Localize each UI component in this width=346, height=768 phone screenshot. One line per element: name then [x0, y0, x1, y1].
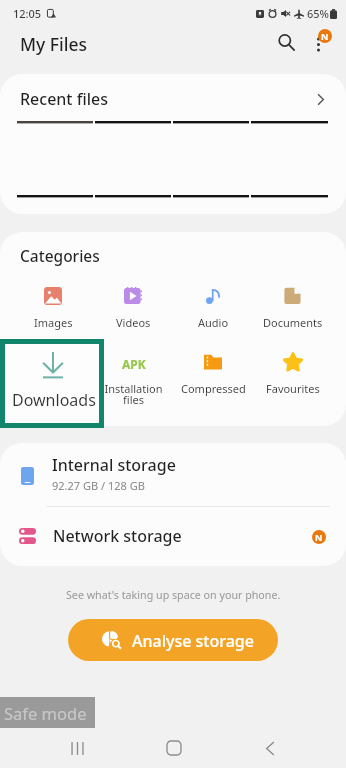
- staticText: Recent files: [20, 88, 108, 110]
- button[interactable]: Videos: [93, 287, 173, 330]
- button[interactable]: Favourites: [253, 353, 333, 396]
- button[interactable]: Recent files: [0, 74, 346, 122]
- button[interactable]: Internal storage: [0, 443, 346, 506]
- staticText: Videos: [116, 315, 151, 330]
- button[interactable]: Home: [133, 728, 213, 768]
- button[interactable]: Documents: [253, 287, 333, 330]
- staticText: 65%: [307, 6, 329, 21]
- button[interactable]: Installation files: [93, 353, 173, 408]
- button[interactable]: Back: [230, 728, 310, 768]
- staticText: APK: [122, 356, 146, 372]
- button[interactable]: Images: [13, 287, 93, 330]
- button[interactable]: Search: [266, 22, 306, 62]
- button[interactable]: Network storage: [0, 507, 346, 566]
- staticText: Safe mode: [4, 702, 87, 724]
- button[interactable]: Recents: [37, 728, 117, 768]
- staticText: Internal storage: [52, 454, 176, 476]
- staticText: Downloads: [12, 389, 96, 411]
- staticText: Analyse storage: [132, 630, 254, 652]
- button[interactable]: Audio: [173, 287, 253, 330]
- staticText: My Files: [20, 32, 88, 56]
- staticText: 12:05: [13, 6, 42, 21]
- staticText: See what's taking up space on your phone…: [66, 588, 281, 603]
- button[interactable]: More options: [298, 22, 338, 62]
- staticText: Documents: [263, 315, 323, 330]
- staticText: 92.27 GB / 128 GB: [52, 478, 145, 493]
- button[interactable]: Compressed: [173, 353, 253, 396]
- staticText: Images: [34, 315, 73, 330]
- staticText: N: [315, 531, 323, 543]
- staticText: Installation files: [104, 381, 163, 408]
- staticText: Audio: [198, 315, 229, 330]
- staticText: Categories: [20, 245, 100, 266]
- staticText: Favourites: [266, 381, 320, 396]
- staticText: N: [321, 30, 329, 42]
- staticText: Compressed: [181, 381, 246, 396]
- button[interactable]: Downloads: [5, 344, 99, 423]
- staticText: Network storage: [53, 525, 182, 547]
- button[interactable]: Analyse storage: [68, 619, 278, 661]
